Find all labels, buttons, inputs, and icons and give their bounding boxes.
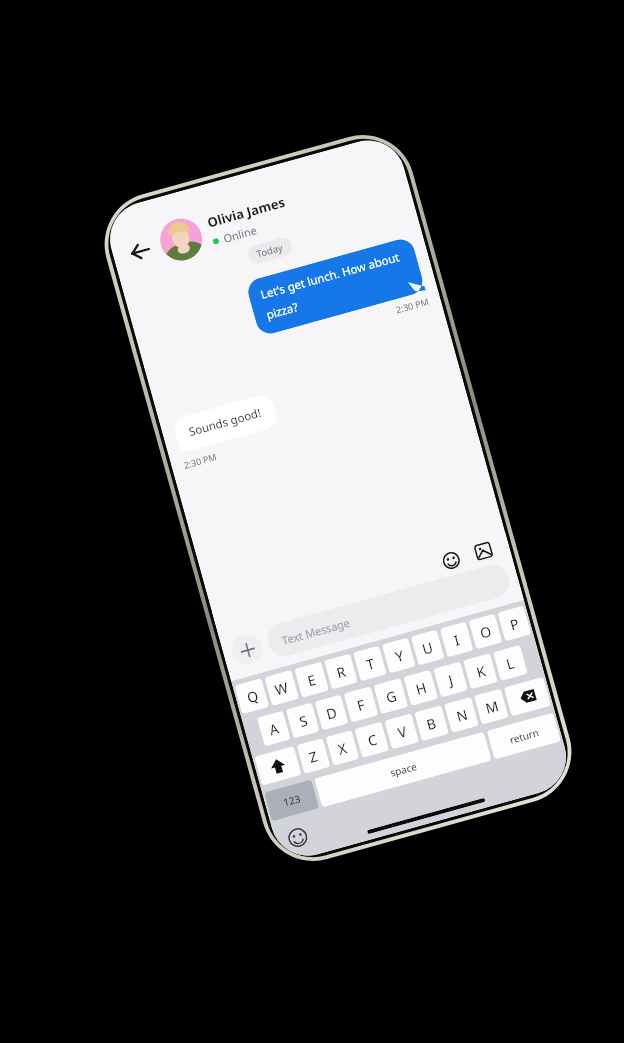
button[interactable]: M (474, 688, 509, 725)
button[interactable]: L (493, 645, 528, 681)
button[interactable]: Let's get lunch. How about pizza? (245, 236, 426, 337)
staticText: D (324, 702, 340, 724)
staticText: M (483, 696, 501, 718)
button[interactable]: 123 (264, 779, 319, 821)
button[interactable]: Text Message (264, 561, 513, 660)
button[interactable]: D (315, 694, 349, 731)
button[interactable]: Z (296, 738, 330, 774)
button[interactable]: R (324, 653, 358, 690)
button[interactable]: X (325, 730, 359, 766)
button[interactable]: Emoji (435, 544, 467, 576)
button[interactable]: F (343, 686, 378, 723)
button[interactable]: N (444, 697, 479, 733)
staticText: J (446, 670, 455, 690)
button[interactable]: Y (382, 637, 416, 673)
button[interactable]: Sounds good! (171, 392, 280, 454)
button[interactable]: B (414, 705, 449, 741)
staticText: O (478, 621, 493, 642)
button[interactable]: K (463, 653, 498, 689)
button[interactable]: return (487, 712, 561, 760)
button[interactable]: Backspace (504, 677, 551, 717)
button[interactable]: V (384, 713, 419, 750)
staticText: 2:30 PM (182, 450, 218, 471)
button[interactable]: Shift (254, 746, 302, 786)
staticText: space (388, 759, 418, 780)
staticText: Today (255, 241, 285, 260)
staticText: Online (221, 222, 259, 246)
button[interactable]: Add attachment (229, 631, 266, 668)
button[interactable]: H (403, 670, 438, 706)
staticText: Q (245, 686, 260, 707)
staticText: U (420, 637, 436, 658)
staticText: R (334, 662, 348, 682)
button[interactable]: Back (120, 231, 159, 271)
button[interactable]: G (373, 678, 408, 714)
staticText: 123 (282, 791, 303, 809)
button[interactable]: T (353, 645, 387, 681)
button[interactable]: space (314, 732, 492, 807)
button[interactable]: Today (246, 235, 294, 266)
staticText: 2:30 PM (394, 295, 430, 315)
staticText: E (305, 670, 318, 690)
staticText: T (364, 654, 377, 674)
staticText: Olivia James (205, 193, 287, 231)
staticText: C (366, 730, 379, 750)
button[interactable]: P (497, 605, 531, 641)
button[interactable]: S (286, 702, 320, 739)
button[interactable]: Olivia James (155, 190, 293, 265)
staticText: F (355, 695, 367, 715)
staticText: P (508, 613, 521, 634)
staticText: I (452, 630, 462, 650)
button[interactable]: W (264, 670, 299, 706)
button[interactable]: Q (234, 678, 269, 714)
staticText: W (273, 677, 291, 699)
staticText: B (424, 713, 439, 734)
staticText: Z (307, 746, 321, 767)
button[interactable]: U (411, 629, 445, 665)
staticText: N (454, 705, 470, 726)
staticText: Sounds good! (187, 405, 263, 440)
staticText: Y (393, 646, 406, 666)
button[interactable]: J (433, 661, 468, 698)
staticText: Let's get lunch. How about pizza? (259, 248, 409, 323)
staticText: A (267, 719, 281, 739)
staticText: V (395, 721, 409, 742)
staticText: S (297, 711, 310, 731)
button[interactable]: Emoji keyboard (281, 821, 313, 853)
button[interactable]: I (440, 621, 474, 657)
button[interactable]: Send image (467, 535, 499, 567)
staticText: X (336, 738, 349, 759)
staticText: K (474, 661, 488, 682)
staticText: L (504, 653, 517, 674)
staticText: G (384, 686, 399, 707)
button[interactable]: A (257, 710, 291, 747)
staticText: return (508, 725, 541, 747)
button[interactable]: C (354, 722, 389, 758)
button[interactable]: E (294, 661, 329, 698)
staticText: H (413, 677, 429, 699)
staticText: Text Message (280, 615, 352, 648)
button[interactable]: O (468, 613, 502, 649)
